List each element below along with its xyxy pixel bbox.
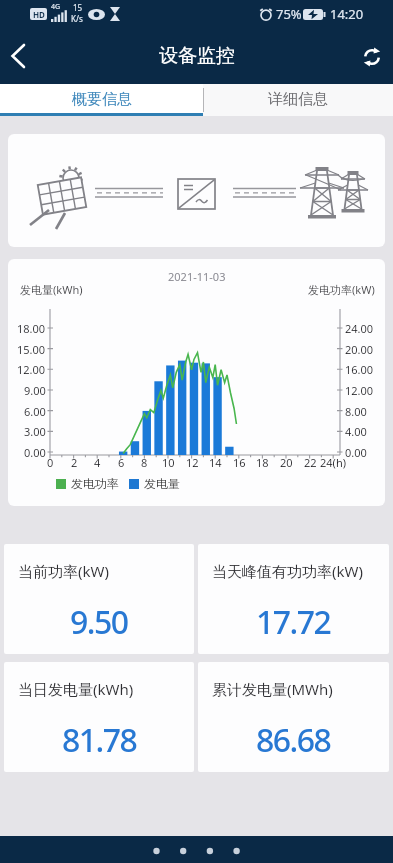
staticText: 4G: [51, 2, 61, 12]
staticText: 累计发电量(MWh): [212, 679, 333, 699]
staticText: 15.00: [17, 342, 46, 357]
staticText: 16.00: [345, 362, 374, 377]
staticText: 12.00: [17, 362, 46, 377]
staticText: 2021-11-03: [168, 269, 226, 284]
staticText: 发电量(kWh): [20, 282, 83, 297]
button[interactable]: 当日发电量(kWh): [4, 662, 194, 772]
staticText: 86.68: [256, 718, 331, 762]
staticText: 75%: [276, 5, 302, 23]
staticText: 20: [280, 455, 293, 470]
staticText: 20.00: [345, 342, 374, 357]
staticText: 6: [118, 455, 125, 470]
staticText: 16: [233, 455, 246, 470]
staticText: 18: [256, 455, 269, 470]
staticText: 12.00: [345, 383, 374, 398]
staticText: 8.00: [345, 404, 367, 419]
staticText: 22: [304, 455, 317, 470]
button[interactable]: 概要信息: [0, 84, 203, 116]
staticText: 24(h): [320, 455, 346, 470]
staticText: 3.00: [24, 424, 46, 439]
staticText: 0.00: [345, 445, 367, 460]
staticText: 设备监控: [159, 44, 235, 68]
staticText: 发电功率(kW): [308, 282, 375, 297]
staticText: 发电功率: [71, 476, 119, 491]
staticText: 当前功率(kW): [18, 561, 109, 581]
staticText: 9.00: [24, 383, 46, 398]
button[interactable]: [0, 34, 44, 78]
staticText: 24.00: [345, 321, 374, 336]
staticText: 4: [94, 455, 101, 470]
staticText: 15: [73, 2, 83, 13]
staticText: 当日发电量(kWh): [18, 679, 134, 699]
button[interactable]: 详细信息: [203, 84, 393, 116]
staticText: HD: [33, 9, 45, 20]
staticText: 8: [141, 455, 148, 470]
staticText: 0.00: [24, 445, 46, 460]
staticText: 6.00: [24, 404, 46, 419]
staticText: 81.78: [62, 718, 137, 762]
button[interactable]: 累计发电量(MWh): [198, 662, 389, 772]
staticText: 概要信息: [72, 90, 132, 109]
staticText: 发电量: [144, 476, 180, 491]
staticText: 14:20: [330, 5, 364, 23]
staticText: 详细信息: [268, 90, 328, 109]
staticText: 4.00: [345, 424, 367, 439]
staticText: 9.50: [70, 600, 128, 644]
staticText: 0: [47, 455, 54, 470]
button[interactable]: 当前功率(kW): [4, 544, 194, 654]
staticText: 14: [209, 455, 222, 470]
staticText: 10: [162, 455, 175, 470]
staticText: 12: [186, 455, 199, 470]
staticText: 当天峰值有功功率(kW): [212, 561, 363, 581]
button[interactable]: [352, 34, 392, 78]
staticText: 2: [71, 455, 78, 470]
staticText: K/s: [71, 13, 83, 24]
staticText: 18.00: [17, 321, 46, 336]
staticText: 17.72: [256, 600, 331, 644]
button[interactable]: 当天峰值有功功率(kW): [198, 544, 389, 654]
